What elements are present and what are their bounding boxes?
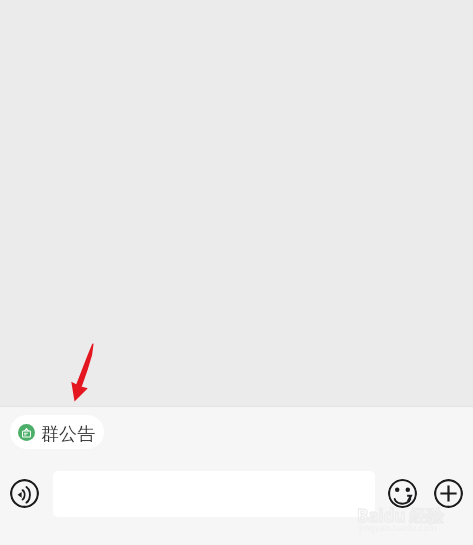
button[interactable]: Emoji: [388, 479, 417, 508]
button[interactable]: Voice input: [10, 479, 39, 508]
button[interactable]: 群公告: [10, 415, 104, 449]
staticText: 群公告: [41, 423, 95, 446]
button[interactable]: More: [434, 479, 463, 508]
staticText: Baidu 经验: [357, 504, 444, 527]
